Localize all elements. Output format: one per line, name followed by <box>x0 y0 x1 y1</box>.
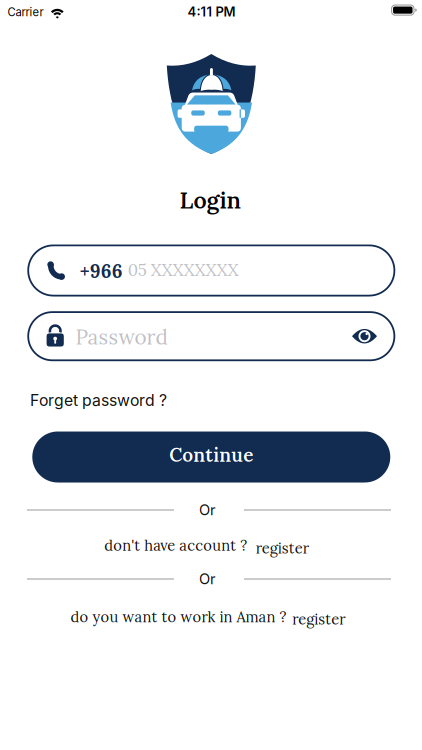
staticText: 4:11 PM <box>187 4 235 20</box>
staticText: Forget password ? <box>30 391 167 410</box>
staticText: register <box>256 539 309 557</box>
staticText: Continue <box>169 443 253 467</box>
button[interactable]: register <box>292 610 345 628</box>
button[interactable]: Show password <box>351 328 377 344</box>
button[interactable]: register <box>256 539 309 557</box>
button[interactable]: Continue <box>32 431 390 482</box>
staticText: Or <box>199 570 216 588</box>
staticText: 05 XXXXXXXX <box>128 259 239 280</box>
button[interactable]: Forget password ? <box>30 391 167 410</box>
staticText: Carrier <box>7 5 43 19</box>
staticText: do you want to work in Aman ? <box>70 608 286 626</box>
staticText: +966 <box>80 259 123 283</box>
staticText: Or <box>199 501 216 519</box>
staticText: Login <box>179 185 240 215</box>
staticText: don't have account ? <box>104 536 247 555</box>
staticText: Password <box>75 324 167 350</box>
staticText: register <box>292 610 345 628</box>
